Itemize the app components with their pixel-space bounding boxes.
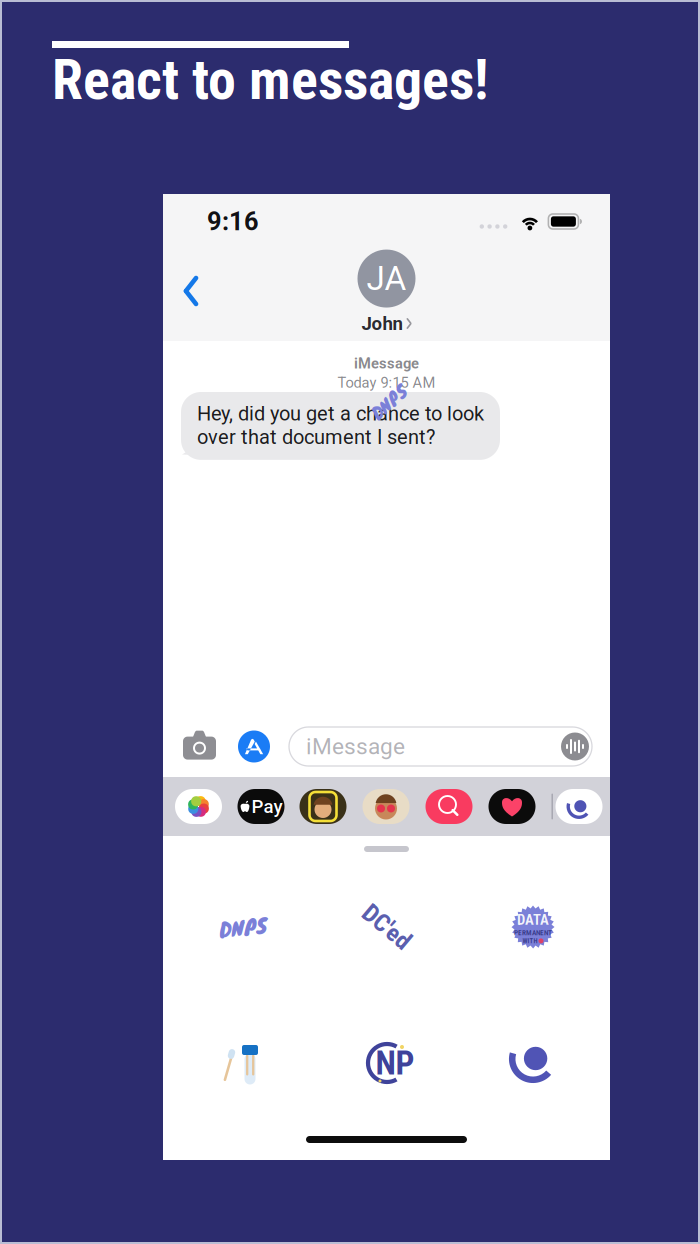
button[interactable]: Sticker pack: [555, 789, 602, 824]
staticText: PERMANENT: [514, 928, 552, 937]
staticText: Pay: [251, 796, 282, 817]
staticText: iMessage: [306, 733, 405, 760]
button[interactable]: Logo sticker: [458, 1028, 607, 1098]
button[interactable]: JA: [357, 249, 415, 333]
button[interactable]: Photos: [175, 789, 222, 824]
staticText: DATA: [517, 911, 549, 928]
staticText: NP: [375, 1043, 414, 1083]
staticText: iMessage: [354, 355, 419, 372]
staticText: Hey, did you get a chance to look over t…: [197, 402, 484, 449]
staticText: DNPS: [219, 911, 267, 943]
button[interactable]: Data permanent sticker: [458, 892, 607, 962]
staticText: John: [361, 313, 402, 334]
staticText: JA: [366, 259, 406, 298]
button[interactable]: NP sticker: [312, 1028, 461, 1098]
button[interactable]: Audio message: [561, 732, 589, 760]
staticText: DC'ed: [359, 912, 415, 942]
staticText: React to messages!: [52, 47, 489, 113]
staticText: DNPS: [368, 388, 410, 415]
button[interactable]: App Store: [238, 730, 270, 762]
button[interactable]: Apple Pay: [237, 789, 284, 824]
button[interactable]: Camera: [183, 732, 216, 760]
staticText: WITH: [522, 937, 537, 945]
staticText: Today 9:15 AM: [337, 374, 435, 391]
button[interactable]: #images: [425, 789, 472, 824]
button[interactable]: Digital Touch: [488, 789, 535, 824]
button[interactable]: Memoji: [299, 789, 346, 824]
button[interactable]: DNPS sticker: [168, 892, 317, 962]
button[interactable]: DC'ed sticker: [312, 892, 461, 962]
button[interactable]: Back: [163, 255, 217, 326]
button[interactable]: Memoji with heart eyes: [362, 789, 409, 824]
staticText: 9:16: [207, 207, 259, 236]
button[interactable]: Swab and vial sticker: [168, 1028, 317, 1098]
